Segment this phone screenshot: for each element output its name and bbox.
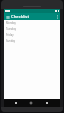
button[interactable]: More options [55, 13, 60, 20]
staticText: Checklist [11, 14, 29, 20]
button[interactable]: Home [28, 100, 34, 106]
button[interactable]: Tuesday [4, 26, 60, 32]
button[interactable]: Open navigation drawer [4, 13, 11, 20]
staticText: Tuesday [6, 27, 16, 31]
button[interactable]: Recent apps [44, 100, 50, 106]
staticText: Friday [6, 33, 14, 37]
button[interactable]: Checklist [11, 13, 55, 20]
button[interactable]: Friday [4, 32, 60, 38]
button[interactable]: Back [13, 100, 19, 106]
staticText: Sunday [6, 39, 16, 43]
button[interactable]: Sunday [4, 38, 60, 44]
button[interactable]: Monday [4, 20, 60, 26]
staticText: Monday [6, 21, 16, 25]
